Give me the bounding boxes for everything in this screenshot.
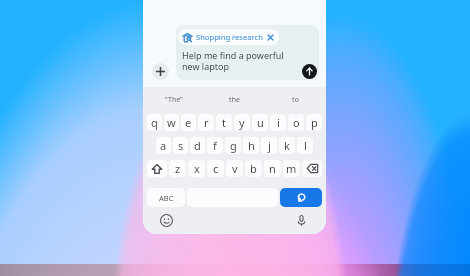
button[interactable]: t	[216, 114, 232, 131]
staticText: f	[213, 138, 217, 153]
button[interactable]: h	[243, 137, 259, 154]
button[interactable]: to	[265, 87, 326, 113]
button[interactable]: Emoji	[160, 214, 173, 227]
staticText: g	[230, 138, 237, 153]
staticText: z	[175, 161, 181, 176]
button[interactable]: j	[261, 137, 277, 154]
staticText: l	[304, 138, 307, 153]
staticText: Help me find a powerful new laptop	[182, 49, 284, 72]
button[interactable]: Voice input	[295, 214, 308, 227]
staticText: k	[284, 138, 290, 153]
staticText: ABC	[159, 193, 174, 203]
staticText: Shopping research	[196, 32, 263, 42]
staticText: the	[229, 95, 240, 105]
staticText: j	[268, 138, 271, 153]
button[interactable]: g	[225, 137, 241, 154]
button[interactable]: f	[207, 137, 223, 154]
button[interactable]: l	[297, 137, 313, 154]
button[interactable]: m	[283, 160, 300, 177]
staticText: u	[257, 115, 264, 130]
staticText: e	[185, 115, 192, 130]
staticText: to	[292, 95, 299, 105]
staticText: n	[269, 161, 276, 176]
button[interactable]: k	[279, 137, 295, 154]
button[interactable]: a	[156, 137, 171, 154]
staticText: b	[250, 161, 257, 176]
staticText: i	[277, 115, 280, 130]
button[interactable]: d	[190, 137, 205, 154]
staticText: v	[232, 161, 238, 176]
button[interactable]: y	[234, 114, 250, 131]
button[interactable]: i	[270, 114, 286, 131]
staticText: c	[213, 161, 219, 176]
button[interactable]: z	[169, 160, 186, 177]
button[interactable]: x	[188, 160, 205, 177]
button[interactable]: b	[245, 160, 262, 177]
button[interactable]: Send	[302, 64, 317, 79]
button[interactable]: Shopping research	[178, 29, 279, 45]
staticText: q	[151, 115, 158, 130]
staticText: h	[248, 138, 255, 153]
button[interactable]: n	[264, 160, 281, 177]
staticText: "The"	[165, 95, 183, 105]
staticText: r	[204, 115, 209, 130]
button[interactable]: v	[226, 160, 243, 177]
button[interactable]: u	[252, 114, 268, 131]
button[interactable]: s	[173, 137, 188, 154]
staticText: m	[286, 161, 297, 176]
staticText: o	[293, 115, 300, 130]
button[interactable]: Add attachment	[152, 63, 169, 80]
staticText: t	[222, 115, 226, 130]
button[interactable]: c	[207, 160, 224, 177]
staticText: a	[160, 138, 167, 153]
button[interactable]: o	[288, 114, 304, 131]
staticText: y	[239, 115, 245, 130]
button[interactable]: r	[198, 114, 214, 131]
staticText: p	[311, 115, 318, 130]
button[interactable]: ABC	[147, 188, 185, 207]
staticText: d	[194, 138, 201, 153]
button[interactable]: the	[204, 87, 265, 113]
button[interactable]: q	[147, 114, 162, 131]
staticText: x	[194, 161, 200, 176]
button[interactable]: e	[181, 114, 196, 131]
button[interactable]: w	[164, 114, 179, 131]
button[interactable]: p	[306, 114, 322, 131]
button[interactable]: Enter	[280, 188, 322, 207]
button[interactable]	[302, 160, 322, 177]
staticText: w	[167, 115, 176, 130]
button[interactable]	[147, 160, 167, 177]
button[interactable]: "The"	[143, 87, 204, 113]
staticText: s	[178, 138, 184, 153]
